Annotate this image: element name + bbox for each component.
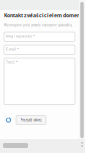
button[interactable]: Odśwież kod (4, 116, 13, 125)
staticText: E-mail * (6, 47, 19, 51)
button[interactable]: E-mail * (4, 45, 75, 55)
button[interactable]: Przejdź dalej (16, 116, 46, 124)
button[interactable]: Imię i nazwisko * (4, 32, 75, 42)
staticText: Wymagane pola zostały oznaczone gwiazdką (4, 23, 72, 27)
staticText: Treść * (6, 60, 18, 64)
staticText: Przejdź dalej (20, 118, 41, 122)
button[interactable]: Treść * (4, 58, 75, 105)
staticText: Kontakt z właścicielem domeny bod (4, 12, 85, 19)
staticText: Imię i nazwisko * (6, 34, 35, 38)
